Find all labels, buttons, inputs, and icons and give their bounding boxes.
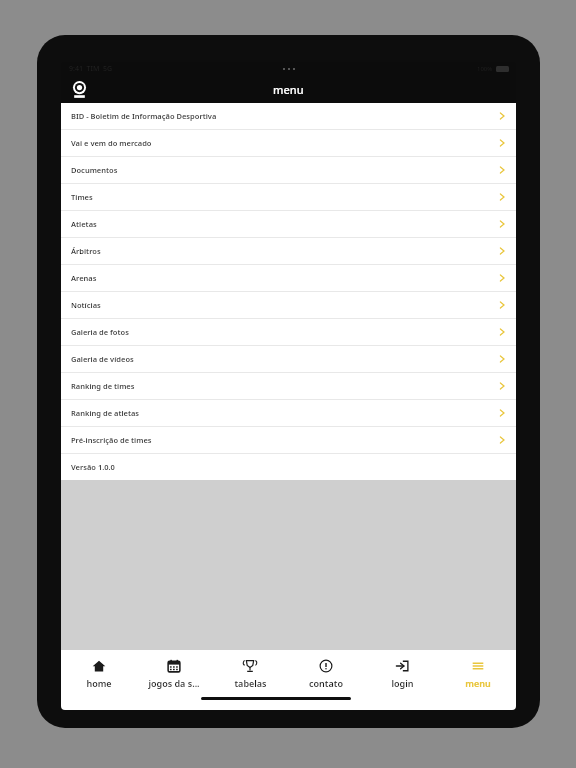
button[interactable]: Galeria de vídeos xyxy=(61,346,516,372)
button[interactable]: Galeria de fotos xyxy=(61,319,516,345)
button[interactable]: home xyxy=(61,650,136,697)
button[interactable]: Notícias xyxy=(61,292,516,318)
staticText: Notícias xyxy=(71,300,497,310)
staticText: Arenas xyxy=(71,273,497,283)
staticText: tabelas xyxy=(234,677,267,689)
staticText: Documentos xyxy=(71,165,497,175)
button[interactable]: contato xyxy=(288,650,364,697)
button[interactable]: Pré-inscrição de times xyxy=(61,427,516,453)
button[interactable]: Documentos xyxy=(61,157,516,183)
staticText: Pré-inscrição de times xyxy=(71,435,497,445)
staticText: Galeria de vídeos xyxy=(71,354,497,364)
staticText: BID - Boletim de Informação Desportiva xyxy=(71,111,497,121)
staticText: Versão 1.0.0 xyxy=(71,462,115,472)
button[interactable]: BID - Boletim de Informação Desportiva xyxy=(61,103,516,129)
staticText: Vai e vem do mercado xyxy=(71,138,497,148)
button[interactable]: menu xyxy=(440,650,516,697)
staticText: contato xyxy=(309,677,343,689)
staticText: menu xyxy=(465,677,491,689)
button[interactable]: Atletas xyxy=(61,211,516,237)
staticText: jogos da s... xyxy=(148,677,200,689)
button[interactable]: Ranking de atletas xyxy=(61,400,516,426)
staticText: Ranking de times xyxy=(71,381,497,391)
button[interactable]: Vai e vem do mercado xyxy=(61,130,516,156)
button[interactable]: tabelas xyxy=(212,650,288,697)
button[interactable]: Árbitros xyxy=(61,238,516,264)
staticText: 9:41 TIM 5G xyxy=(69,64,113,74)
staticText: Galeria de fotos xyxy=(71,327,497,337)
button[interactable]: Arenas xyxy=(61,265,516,291)
button[interactable]: Times xyxy=(61,184,516,210)
button[interactable]: App logo xyxy=(69,79,90,100)
staticText: 100% xyxy=(477,65,493,73)
staticText: Times xyxy=(71,192,497,202)
staticText: Árbitros xyxy=(71,246,497,256)
staticText: home xyxy=(86,677,112,689)
button[interactable]: login xyxy=(364,650,440,697)
staticText: Atletas xyxy=(71,219,497,229)
staticText: menu xyxy=(273,82,304,97)
staticText: Ranking de atletas xyxy=(71,408,497,418)
staticText: login xyxy=(391,677,414,689)
button[interactable]: jogos da s... xyxy=(136,650,212,697)
button[interactable]: Ranking de times xyxy=(61,373,516,399)
